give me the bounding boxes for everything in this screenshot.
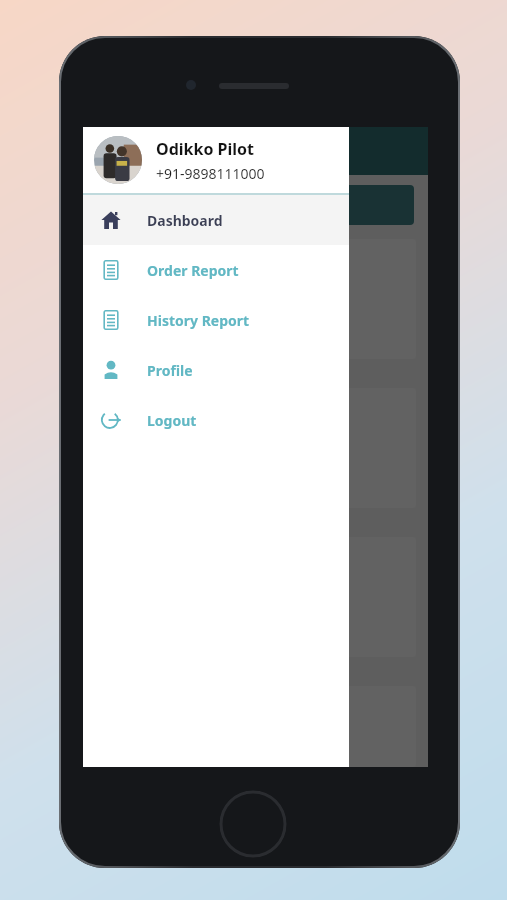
staticText: +91-9898111000 xyxy=(156,164,265,183)
staticText: Order Report xyxy=(147,261,239,280)
button[interactable]: Open navigation drawer xyxy=(95,135,127,167)
button[interactable]: Dashboard xyxy=(83,195,349,245)
button[interactable]: Profile xyxy=(83,345,349,395)
button[interactable]: #test2020 xyxy=(95,239,416,359)
staticText: Ashish Patel xyxy=(109,421,189,439)
staticText: #test2020 xyxy=(109,249,173,267)
button[interactable]: #test2020 xyxy=(95,537,416,657)
staticText: Dashboard xyxy=(147,211,223,230)
staticText: Logout xyxy=(147,411,197,430)
button[interactable]: History Report xyxy=(83,295,349,345)
staticText: #test2020 xyxy=(109,398,173,416)
staticText: Test xyxy=(109,309,130,324)
button[interactable]: Order Report xyxy=(83,245,349,295)
button[interactable]: Daily Report xyxy=(97,185,414,225)
staticText: History Report xyxy=(147,311,250,330)
staticText: test xyxy=(109,324,129,339)
button[interactable]: #test2020 xyxy=(95,388,416,508)
button[interactable]: #test2020 xyxy=(95,686,416,767)
button[interactable]: Logout xyxy=(83,395,349,445)
staticText: Profile xyxy=(147,361,193,380)
button[interactable]: Odikko Pilot xyxy=(83,127,349,193)
staticText: Odikko Pilot xyxy=(156,138,254,160)
button[interactable]: Home xyxy=(219,790,287,858)
staticText: Ashish Patel xyxy=(109,272,189,290)
